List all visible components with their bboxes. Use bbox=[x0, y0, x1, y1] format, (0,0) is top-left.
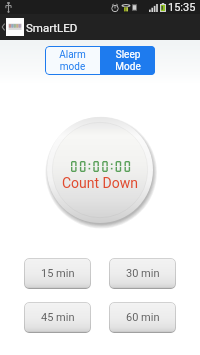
button[interactable]: 15 min bbox=[24, 258, 91, 289]
button[interactable]: Count Down bbox=[47, 117, 153, 223]
staticText: Count Down bbox=[62, 175, 139, 191]
staticText: SmartLED bbox=[26, 21, 78, 34]
staticText: Sleep Mode bbox=[115, 49, 141, 73]
staticText: 60 min bbox=[126, 311, 160, 324]
staticText: 15:35 bbox=[168, 1, 196, 14]
button[interactable]: Navigate up bbox=[0, 14, 200, 40]
button[interactable]: Sleep Mode bbox=[100, 46, 155, 75]
button[interactable]: Alarm mode bbox=[45, 46, 100, 75]
staticText: Alarm mode bbox=[59, 49, 86, 73]
staticText: 15 min bbox=[41, 267, 75, 280]
staticText: 30 min bbox=[126, 267, 160, 280]
button[interactable]: 45 min bbox=[24, 302, 91, 333]
other: Navigate up bbox=[0, 20, 6, 34]
button[interactable]: 60 min bbox=[109, 302, 176, 333]
button[interactable]: 30 min bbox=[109, 258, 176, 289]
staticText: 45 min bbox=[41, 311, 75, 324]
